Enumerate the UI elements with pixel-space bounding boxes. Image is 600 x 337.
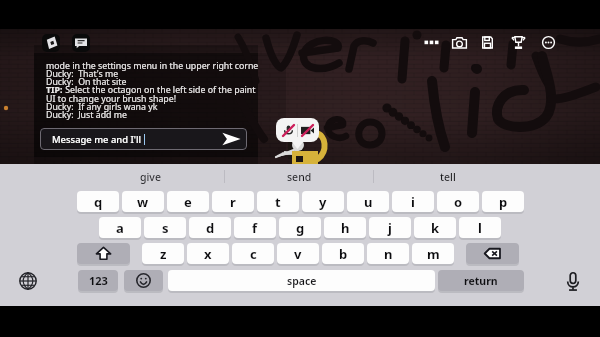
button[interactable]: m (412, 243, 454, 264)
staticText: f (252, 219, 258, 237)
button[interactable]: tell (374, 164, 522, 189)
button[interactable]: x (187, 243, 229, 264)
button[interactable]: n (367, 243, 409, 264)
staticText: n (384, 245, 393, 263)
staticText: x (204, 245, 212, 263)
staticText: h (341, 219, 350, 237)
staticText: y (319, 193, 327, 211)
button[interactable]: s (144, 217, 186, 238)
button[interactable]: send (225, 164, 373, 189)
staticText: tell (440, 170, 456, 184)
staticText: j (388, 219, 392, 237)
button[interactable]: u (347, 191, 389, 212)
button[interactable]: Save (477, 32, 497, 52)
button[interactable]: o (437, 191, 479, 212)
button[interactable]: Backspace (466, 243, 519, 264)
button[interactable]: d (189, 217, 231, 238)
staticText: send (287, 170, 312, 184)
button[interactable]: Leaderboard (508, 32, 528, 52)
staticText: Select the octagon on the left side of t… (63, 84, 256, 96)
staticText: space (287, 274, 317, 288)
staticText: d (206, 219, 215, 237)
button[interactable]: p (482, 191, 524, 212)
staticText: s (162, 219, 169, 237)
staticText: give (140, 170, 161, 184)
staticText: k (431, 219, 440, 237)
button[interactable]: Change language (16, 269, 40, 293)
button[interactable]: a (99, 217, 141, 238)
button[interactable]: z (142, 243, 184, 264)
button[interactable]: return (438, 270, 524, 291)
button[interactable]: Dictation (561, 269, 585, 293)
staticText: Ducky: If any girls wana yk (46, 101, 158, 113)
button[interactable]: w (122, 191, 164, 212)
staticText: Message me and I'll (52, 133, 142, 146)
button[interactable]: l (459, 217, 501, 238)
button[interactable]: i (392, 191, 434, 212)
staticText: mode in the settings menu in the upper r… (46, 60, 259, 72)
staticText: i (411, 193, 415, 211)
button[interactable]: j (369, 217, 411, 238)
staticText: Ducky: That's me (46, 68, 119, 80)
button[interactable]: k (414, 217, 456, 238)
button[interactable]: Menu (538, 32, 558, 52)
button[interactable]: c (232, 243, 274, 264)
staticText: a (116, 219, 124, 237)
staticText: 123 (89, 273, 108, 288)
button[interactable]: t (257, 191, 299, 212)
button[interactable]: b (322, 243, 364, 264)
button[interactable]: give (76, 164, 224, 189)
staticText: g (296, 219, 305, 237)
button[interactable]: e (167, 191, 209, 212)
staticText: r (230, 193, 236, 211)
button[interactable]: Camera (449, 32, 469, 52)
button[interactable]: Emoji (124, 270, 163, 291)
button[interactable]: g (279, 217, 321, 238)
staticText: c (250, 245, 257, 263)
button[interactable]: More options (421, 32, 441, 52)
staticText: b (339, 245, 348, 263)
button[interactable]: Shift (77, 243, 130, 264)
button[interactable]: Chat (72, 34, 90, 52)
staticText: v (294, 245, 302, 263)
staticText: p (499, 193, 508, 211)
button[interactable]: 123 (78, 270, 118, 291)
staticText: Ducky: On that site (46, 76, 127, 88)
button[interactable]: Disable camera (298, 121, 316, 139)
staticText: w (137, 193, 149, 211)
button[interactable]: v (277, 243, 319, 264)
staticText: e (184, 193, 192, 211)
staticText: Ducky: Just add me (46, 109, 127, 121)
staticText: TIP: (46, 84, 63, 96)
button[interactable]: Message me and I'll (40, 128, 247, 150)
button[interactable]: Roblox menu (42, 34, 60, 52)
button[interactable]: q (77, 191, 119, 212)
staticText: z (160, 245, 167, 263)
staticText: return (464, 274, 498, 288)
staticText: m (427, 245, 440, 263)
staticText: UI to change your brush shape! (46, 93, 177, 105)
button[interactable]: y (302, 191, 344, 212)
button[interactable]: h (324, 217, 366, 238)
staticText: q (94, 193, 103, 211)
button[interactable]: f (234, 217, 276, 238)
staticText: u (364, 193, 373, 211)
button[interactable]: r (212, 191, 254, 212)
staticText: o (454, 193, 463, 211)
button[interactable]: Mute microphone (279, 121, 297, 139)
button[interactable]: space (168, 270, 435, 291)
staticText: t (275, 193, 281, 211)
staticText: l (478, 219, 482, 237)
